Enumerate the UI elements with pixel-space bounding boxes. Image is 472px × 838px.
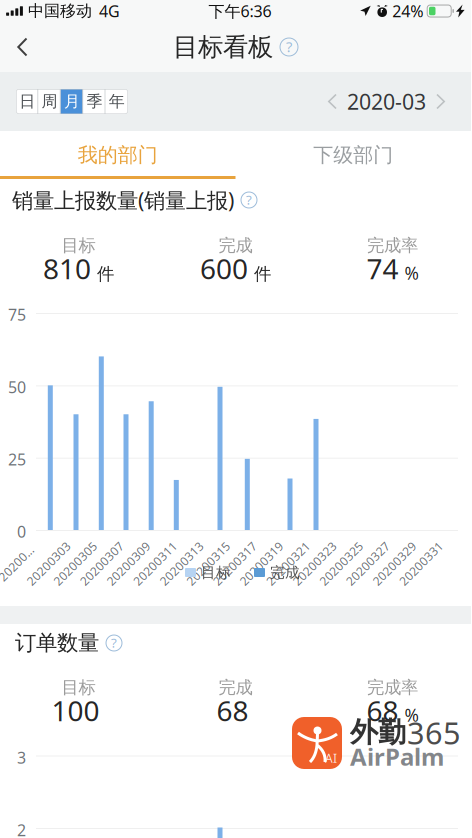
staticText: 20200323 bbox=[287, 555, 343, 571]
staticText: 我的部门 bbox=[78, 143, 158, 167]
button[interactable]: 年 bbox=[106, 89, 128, 114]
staticText: 20200... bbox=[0, 555, 38, 571]
staticText: 下级部门 bbox=[313, 143, 393, 167]
staticText: 完成 bbox=[218, 677, 252, 698]
staticText: 20200331 bbox=[393, 555, 449, 571]
staticText: 销量上报数量(销量上报) bbox=[12, 186, 234, 214]
staticText: 下午6:36 bbox=[209, 0, 272, 22]
staticText: 20200307 bbox=[74, 555, 130, 571]
staticText: 季 bbox=[86, 92, 102, 111]
staticText: ? bbox=[111, 634, 117, 651]
staticText: 600 bbox=[200, 250, 248, 287]
staticText: 20200321 bbox=[260, 555, 316, 571]
button[interactable]: Previous month bbox=[320, 86, 344, 116]
staticText: 订单数量 bbox=[15, 630, 99, 656]
staticText: 365 bbox=[407, 712, 461, 753]
staticText: 目标 bbox=[61, 677, 95, 698]
staticText: 74 bbox=[366, 250, 398, 287]
staticText: AI bbox=[325, 750, 337, 766]
button[interactable]: Back bbox=[0, 25, 44, 69]
staticText: 100 bbox=[51, 692, 99, 729]
staticText: 4G bbox=[99, 0, 120, 22]
button[interactable]: 日 bbox=[16, 89, 38, 114]
staticText: % bbox=[404, 704, 418, 727]
button[interactable]: 我的部门 bbox=[0, 131, 235, 179]
staticText: 完成 bbox=[270, 563, 300, 581]
staticText: 完成率 bbox=[367, 677, 418, 698]
staticText: 20200305 bbox=[47, 555, 103, 571]
button[interactable]: 季 bbox=[83, 89, 106, 114]
staticText: 件 bbox=[97, 263, 114, 285]
staticText: % bbox=[404, 262, 418, 285]
button[interactable]: 月 bbox=[61, 89, 83, 114]
staticText: 目标 bbox=[201, 563, 231, 581]
staticText: 周 bbox=[42, 92, 58, 111]
staticText: AirPalm bbox=[350, 741, 444, 772]
staticText: 68 bbox=[366, 692, 398, 729]
staticText: 24% bbox=[392, 0, 423, 22]
staticText: 中国移动 bbox=[28, 1, 92, 21]
button[interactable]: Next month bbox=[429, 86, 453, 116]
staticText: 20200317 bbox=[207, 555, 263, 571]
staticText: 20200311 bbox=[127, 555, 183, 571]
staticText: 2 bbox=[17, 819, 26, 838]
staticText: 20200315 bbox=[180, 555, 236, 571]
staticText: 月 bbox=[64, 92, 80, 111]
staticText: 目标 bbox=[61, 235, 95, 256]
staticText: 外勤 bbox=[350, 715, 406, 750]
staticText: 完成率 bbox=[367, 235, 418, 256]
staticText: 20200313 bbox=[154, 555, 210, 571]
staticText: 年 bbox=[109, 92, 125, 111]
staticText: 20200325 bbox=[313, 555, 369, 571]
staticText: 75 bbox=[8, 304, 26, 325]
staticText: 20200303 bbox=[21, 555, 77, 571]
staticText: 日 bbox=[19, 92, 35, 111]
staticText: 0 bbox=[17, 521, 26, 542]
staticText: ? bbox=[246, 191, 252, 208]
staticText: 20200327 bbox=[340, 555, 396, 571]
staticText: 68 bbox=[216, 692, 248, 729]
staticText: 20200319 bbox=[233, 555, 289, 571]
staticText: 件 bbox=[254, 263, 271, 285]
staticText: 25 bbox=[8, 449, 26, 470]
staticText: 3 bbox=[17, 747, 26, 768]
staticText: 20200309 bbox=[100, 555, 156, 571]
button[interactable]: 周 bbox=[38, 89, 61, 114]
staticText: 50 bbox=[8, 376, 26, 398]
staticText: 810 bbox=[43, 250, 91, 287]
staticText: 2020-03 bbox=[347, 87, 426, 116]
staticText: ? bbox=[286, 37, 292, 56]
button[interactable]: 下级部门 bbox=[235, 131, 471, 179]
staticText: 目标看板 bbox=[173, 31, 273, 62]
staticText: 完成 bbox=[218, 235, 252, 256]
staticText: 20200329 bbox=[366, 555, 422, 571]
